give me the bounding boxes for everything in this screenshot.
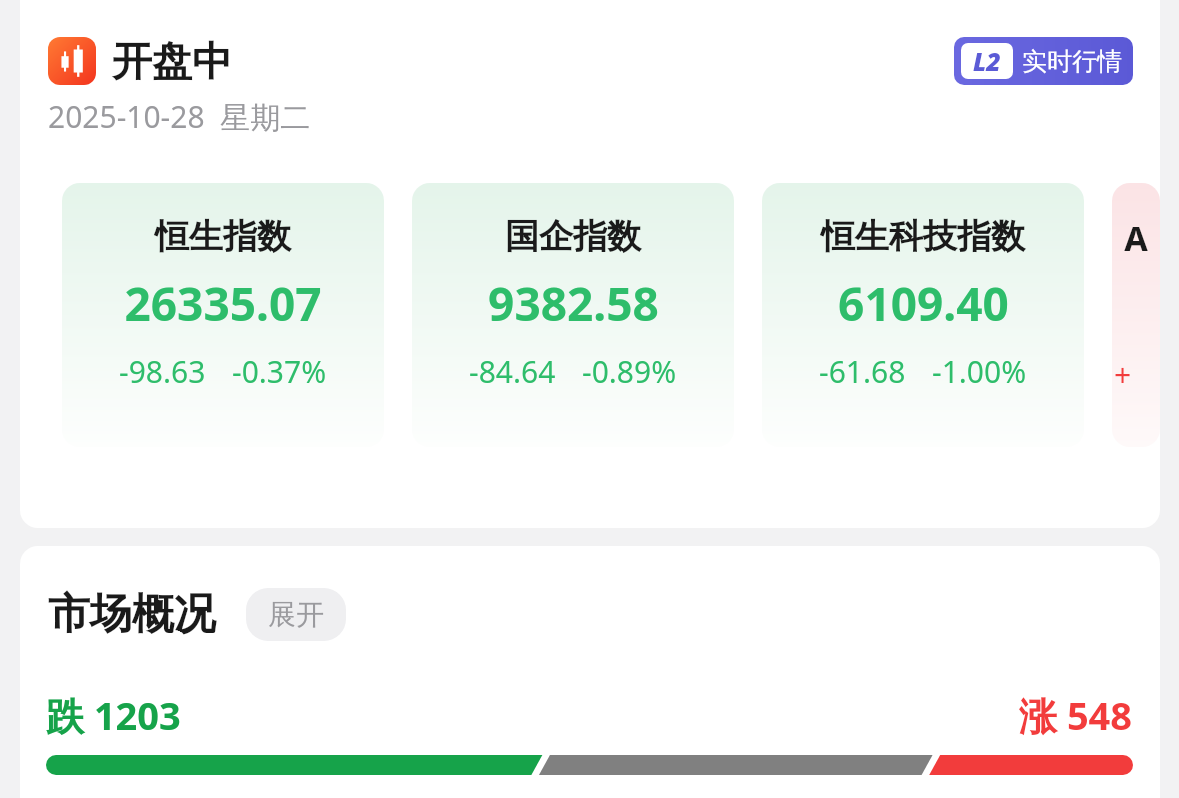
staticText: 展开 [268, 597, 324, 632]
other: Market status [48, 37, 96, 85]
button[interactable]: 展开 [246, 588, 346, 641]
staticText: -1.00% [932, 351, 1027, 392]
staticText: 跌 1203 [46, 689, 181, 741]
staticText: -0.89% [582, 351, 677, 392]
staticText: -0.37% [232, 351, 327, 392]
staticText: 开盘中 [112, 36, 232, 86]
staticText: A [1124, 215, 1148, 261]
staticText: + [1114, 354, 1132, 395]
staticText: -84.64 [469, 351, 556, 392]
staticText: 26335.07 [124, 272, 322, 335]
staticText: 实时行情 [1022, 46, 1122, 77]
staticText: 9382.58 [488, 272, 659, 335]
staticText: 6109.40 [838, 272, 1009, 335]
button[interactable]: 恒生科技指数 [762, 183, 1084, 447]
button[interactable]: 恒生指数 [62, 183, 384, 447]
staticText: -98.63 [119, 351, 206, 392]
staticText: 2025-10-28 星期二 [48, 96, 311, 137]
button[interactable]: L2 [954, 37, 1133, 85]
staticText: 市场概况 [48, 588, 216, 641]
staticText: L2 [973, 44, 1001, 78]
staticText: -61.68 [819, 351, 906, 392]
staticText: 涨 548 [1019, 689, 1133, 741]
button[interactable]: A [1112, 183, 1160, 447]
staticText: 恒生科技指数 [821, 215, 1025, 258]
staticText: 国企指数 [505, 215, 641, 258]
button[interactable]: 国企指数 [412, 183, 734, 447]
button[interactable] [46, 755, 1133, 775]
staticText: 恒生指数 [155, 215, 291, 258]
